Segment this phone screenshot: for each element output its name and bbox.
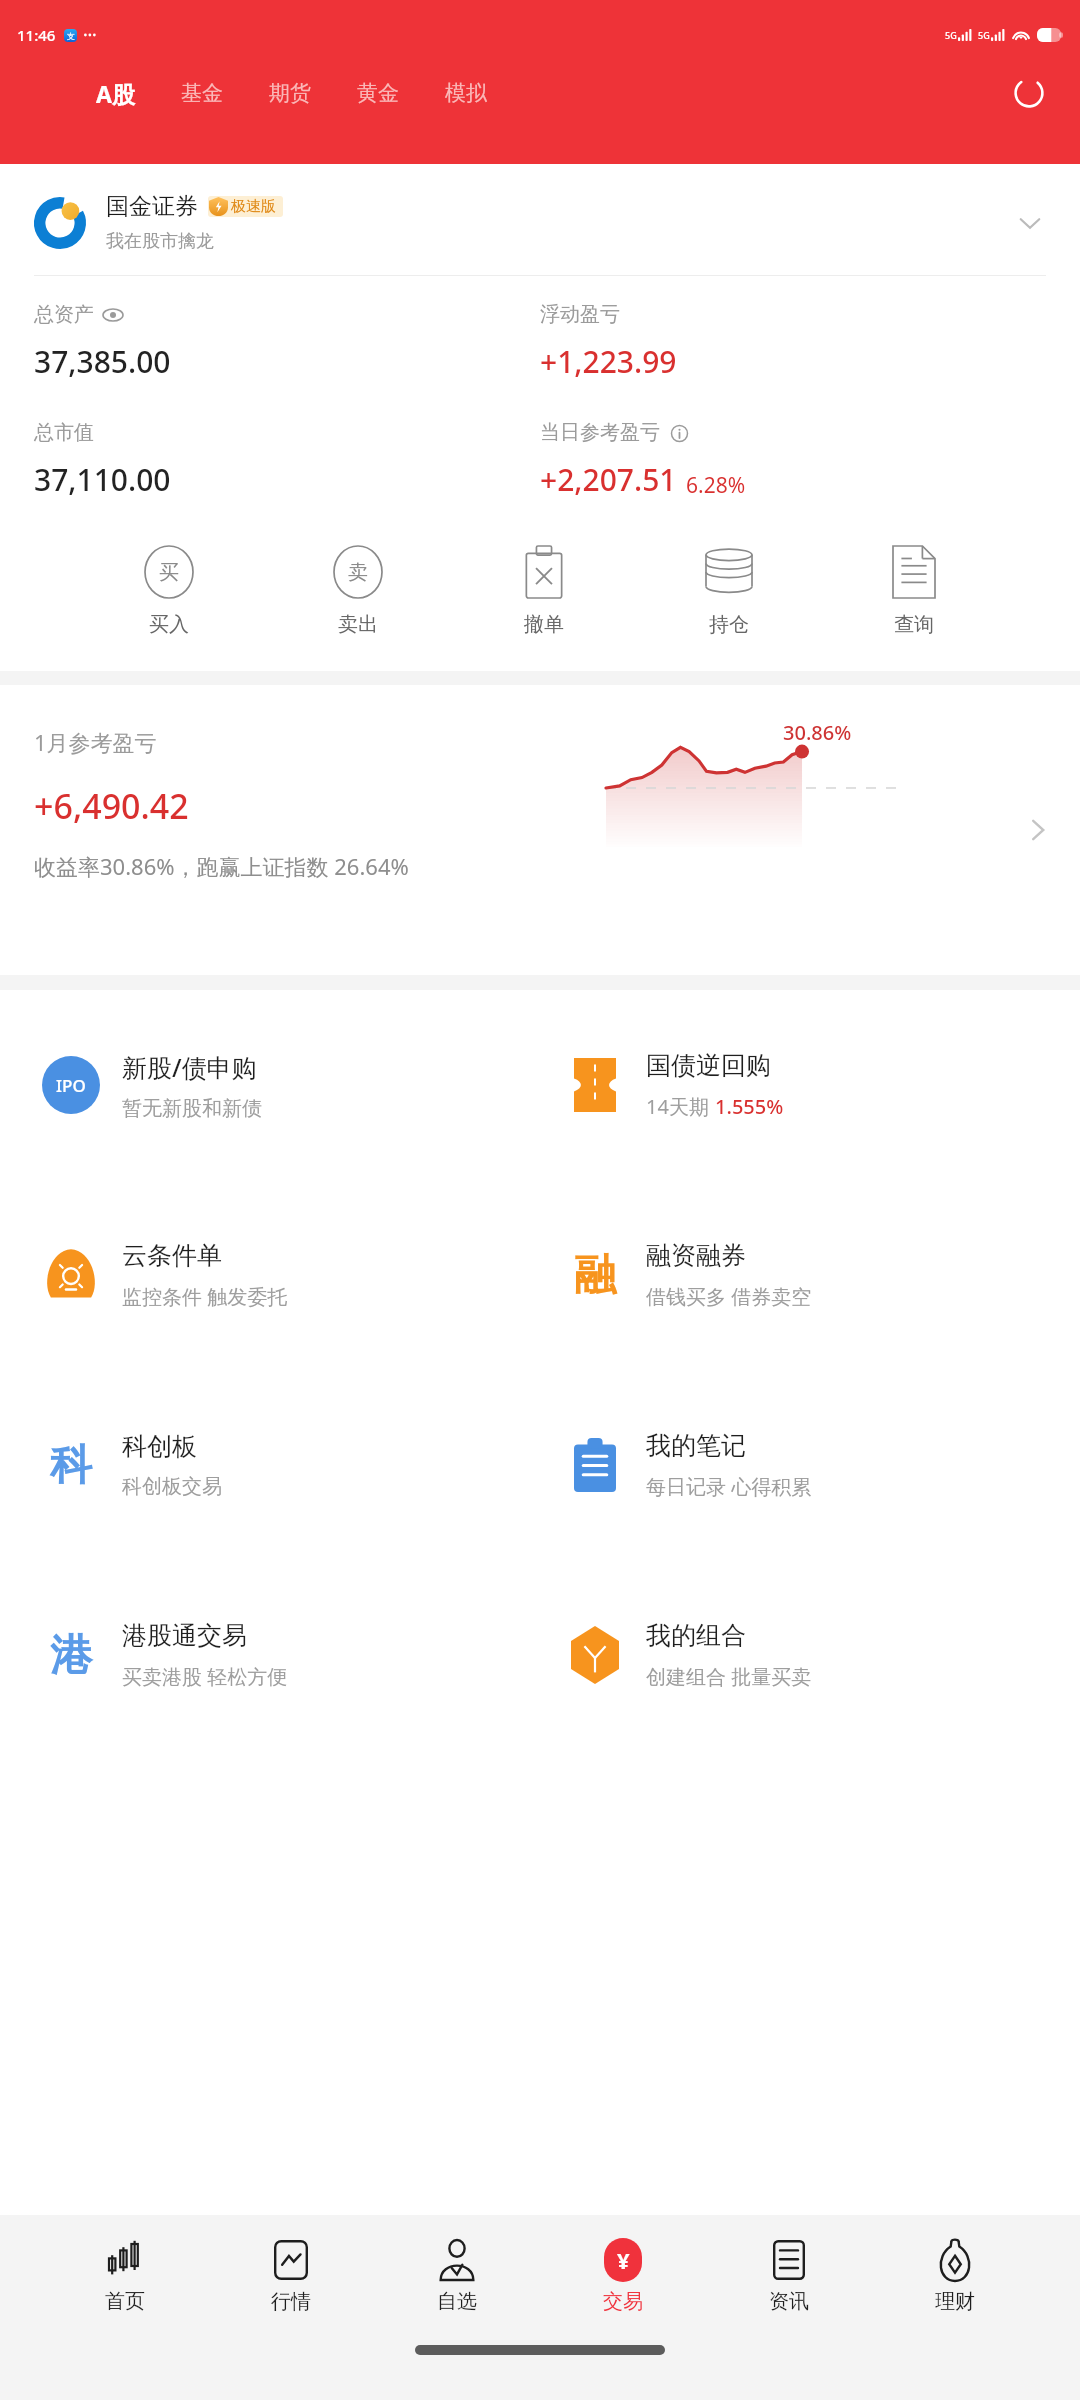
staticText: 查询 <box>894 612 934 637</box>
staticText: 暂无新股和新债 <box>122 1096 262 1121</box>
staticText: 卖出 <box>338 612 378 637</box>
staticText: 浮动盈亏 <box>540 302 620 327</box>
button[interactable]: 融 <box>564 1180 1080 1370</box>
staticText: 14天期 <box>646 1093 715 1120</box>
button[interactable]: 1月参考盈亏 <box>0 685 1080 975</box>
button[interactable]: 资讯 <box>748 2233 830 2318</box>
button[interactable]: 港 <box>40 1560 540 1750</box>
staticText: 融资融券 <box>646 1240 746 1271</box>
staticText: 37,110.00 <box>34 459 171 500</box>
button[interactable]: A股 <box>96 72 135 115</box>
button[interactable]: 科 <box>40 1370 540 1560</box>
staticText: 科创板交易 <box>122 1474 222 1499</box>
staticText: 卖 <box>348 560 368 585</box>
staticText: 总市值 <box>34 420 94 445</box>
staticText: 港 <box>50 1629 92 1682</box>
staticText: 买 <box>159 560 179 585</box>
staticText: 港股通交易 <box>122 1620 247 1651</box>
button[interactable]: 期货 <box>269 74 311 112</box>
button[interactable]: Refresh <box>1006 70 1052 116</box>
staticText: 行情 <box>271 2289 311 2314</box>
staticText: +1,223.99 <box>540 341 677 382</box>
staticText: 我的组合 <box>646 1620 746 1651</box>
button[interactable]: 持仓 <box>692 542 766 641</box>
button[interactable]: 理财 <box>914 2233 996 2318</box>
staticText: +2,207.51 <box>540 459 677 500</box>
button[interactable]: ¥ <box>582 2233 664 2318</box>
staticText: 当日参考盈亏 <box>540 420 660 445</box>
button[interactable]: 基金 <box>181 74 223 112</box>
staticText: 期货 <box>269 80 311 106</box>
staticText: 每日记录 心得积累 <box>646 1473 812 1500</box>
button[interactable]: 云条件单 <box>40 1180 540 1370</box>
staticText: 科 <box>50 1439 92 1492</box>
button[interactable]: 国债逆回购 <box>564 990 1080 1180</box>
staticText: 11:46 <box>17 25 56 45</box>
staticText: 云条件单 <box>122 1240 222 1271</box>
button[interactable]: 国金证券 <box>0 164 1080 276</box>
button[interactable]: Info <box>668 422 690 444</box>
staticText: 资讯 <box>769 2289 809 2314</box>
staticText: 我的笔记 <box>646 1430 746 1461</box>
staticText: 国金证券 <box>106 192 198 221</box>
staticText: 模拟 <box>445 80 487 106</box>
staticText: ¥ <box>617 2245 630 2275</box>
staticText: 首页 <box>105 2289 145 2314</box>
staticText: 国债逆回购 <box>646 1050 771 1081</box>
staticText: 30.86% <box>783 719 852 746</box>
button[interactable]: 首页 <box>84 2233 166 2318</box>
staticText: 1月参考盈亏 <box>34 727 157 757</box>
staticText: 极速版 <box>231 197 276 216</box>
button[interactable]: IPO <box>40 990 540 1180</box>
staticText: 理财 <box>935 2289 975 2314</box>
other: Expand <box>1010 203 1050 243</box>
button[interactable]: 买 <box>131 542 207 641</box>
button[interactable]: 我的笔记 <box>564 1370 1080 1560</box>
staticText: 5G <box>978 29 990 41</box>
staticText: 6.28% <box>686 471 746 500</box>
staticText: 买卖港股 轻松方便 <box>122 1663 288 1690</box>
staticText: 收益率30.86%，跑赢上证指数 26.64% <box>34 851 409 881</box>
staticText: 撤单 <box>524 612 564 637</box>
staticText: 买入 <box>149 612 189 637</box>
staticText: A股 <box>96 78 135 109</box>
staticText: 新股/债申购 <box>122 1050 257 1084</box>
staticText: 5G <box>945 29 957 41</box>
staticText: 科创板 <box>122 1431 197 1462</box>
staticText: 监控条件 触发委托 <box>122 1283 288 1310</box>
button[interactable]: 行情 <box>250 2233 332 2318</box>
staticText: +6,490.42 <box>34 783 189 829</box>
staticText: 黄金 <box>357 80 399 106</box>
staticText: 我在股市擒龙 <box>106 230 214 253</box>
staticText: 1.555% <box>715 1093 784 1120</box>
staticText: 总资产 <box>34 302 94 327</box>
staticText: 创建组合 批量买卖 <box>646 1663 812 1690</box>
button[interactable]: 卖 <box>320 542 396 641</box>
staticText: 借钱买多 借券卖空 <box>646 1283 812 1310</box>
staticText: 持仓 <box>709 612 749 637</box>
staticText: 37,385.00 <box>34 341 171 382</box>
button[interactable]: 自选 <box>416 2233 498 2318</box>
staticText: 交易 <box>603 2289 643 2314</box>
staticText: 支 <box>67 31 75 41</box>
button[interactable]: 我的组合 <box>564 1560 1080 1750</box>
button[interactable]: Toggle visibility <box>102 304 124 326</box>
button[interactable]: 查询 <box>879 542 949 641</box>
button[interactable]: 黄金 <box>357 74 399 112</box>
staticText: 融 <box>574 1249 616 1302</box>
staticText: 基金 <box>181 80 223 106</box>
staticText: IPO <box>56 1074 86 1097</box>
button[interactable]: 撤单 <box>509 542 579 641</box>
staticText: 自选 <box>437 2289 477 2314</box>
button[interactable]: 模拟 <box>445 74 487 112</box>
